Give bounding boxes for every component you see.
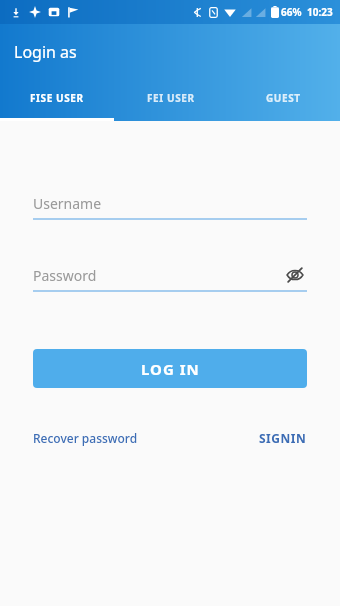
staticText: GUEST — [266, 91, 301, 105]
staticText: 10:23 — [307, 5, 333, 19]
staticText: Password — [33, 266, 97, 285]
staticText: FISE USER — [30, 91, 84, 105]
staticText: LOG IN — [141, 359, 200, 379]
staticText: SIGNIN — [259, 430, 307, 446]
staticText: Recover password — [33, 430, 138, 446]
button[interactable]: SIGNIN — [259, 430, 307, 446]
button[interactable]: GUEST — [227, 80, 340, 121]
staticText: 66% — [281, 5, 302, 19]
staticText: FEI USER — [147, 91, 195, 105]
staticText: Username — [33, 194, 102, 213]
staticText: Login as — [14, 41, 77, 63]
button[interactable]: FEI USER — [114, 80, 227, 121]
button[interactable]: FISE USER — [0, 80, 114, 121]
button[interactable]: Recover password — [33, 430, 138, 446]
button[interactable]: Show password — [283, 264, 307, 286]
button[interactable]: LOG IN — [33, 349, 307, 388]
